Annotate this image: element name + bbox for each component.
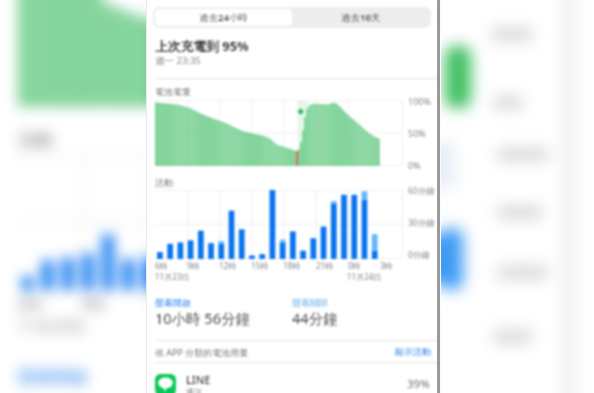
staticText: 螢幕關閉 [292,297,328,308]
staticText: 活動 [155,177,173,188]
staticText: 50% [408,127,426,139]
staticText: 3時 [380,260,393,271]
staticText: 11月23日 [155,271,190,282]
button[interactable]: LINE [147,366,438,393]
staticText: 15時 [251,260,269,271]
staticText: 21時 [316,260,334,271]
staticText: 6時 [18,292,43,314]
staticText: 螢幕開啟 [155,297,191,308]
staticText: 6時 [155,260,168,271]
staticText: 週一 23:35 [155,54,201,67]
staticText: 100% [408,95,431,107]
staticText: 39% [407,376,430,392]
staticText: 0% [408,159,421,171]
staticText: 0分鐘 [408,249,430,261]
staticText: 上次充電到 95% [155,37,249,54]
staticText: 44分鐘 [292,308,338,328]
staticText: 11月24日 [347,271,382,282]
staticText: 9時 [187,260,200,271]
staticText: 活動 [18,129,53,150]
staticText: 60分鐘 [408,185,435,197]
staticText: 12時 [144,292,148,314]
staticText: 10小時 56分鐘 [18,387,148,393]
staticText: 9時 [81,292,106,314]
staticText: 螢幕開啟 [18,365,89,387]
staticText: 18時 [283,260,301,271]
button[interactable]: 過去24小時 [155,9,292,26]
staticText: 11月23日 [18,314,87,336]
staticText: 12時 [219,260,237,271]
staticText: 10小時 56分鐘 [155,308,250,328]
staticText: 30分鐘 [408,217,435,229]
staticText: 依 APP 分類的電池用量 [155,346,249,358]
button[interactable]: 過去10天 [292,9,429,26]
staticText: LINE [186,372,211,387]
staticText: 過去10天 [341,11,381,24]
button[interactable]: 顯示活動 [379,344,431,358]
staticText: 電池電量 [155,86,191,97]
staticText: 0時 [348,260,361,271]
staticText: 顯示活動 [395,346,431,357]
staticText: 通訊 [186,387,202,393]
staticText: 過去24小時 [199,11,248,24]
